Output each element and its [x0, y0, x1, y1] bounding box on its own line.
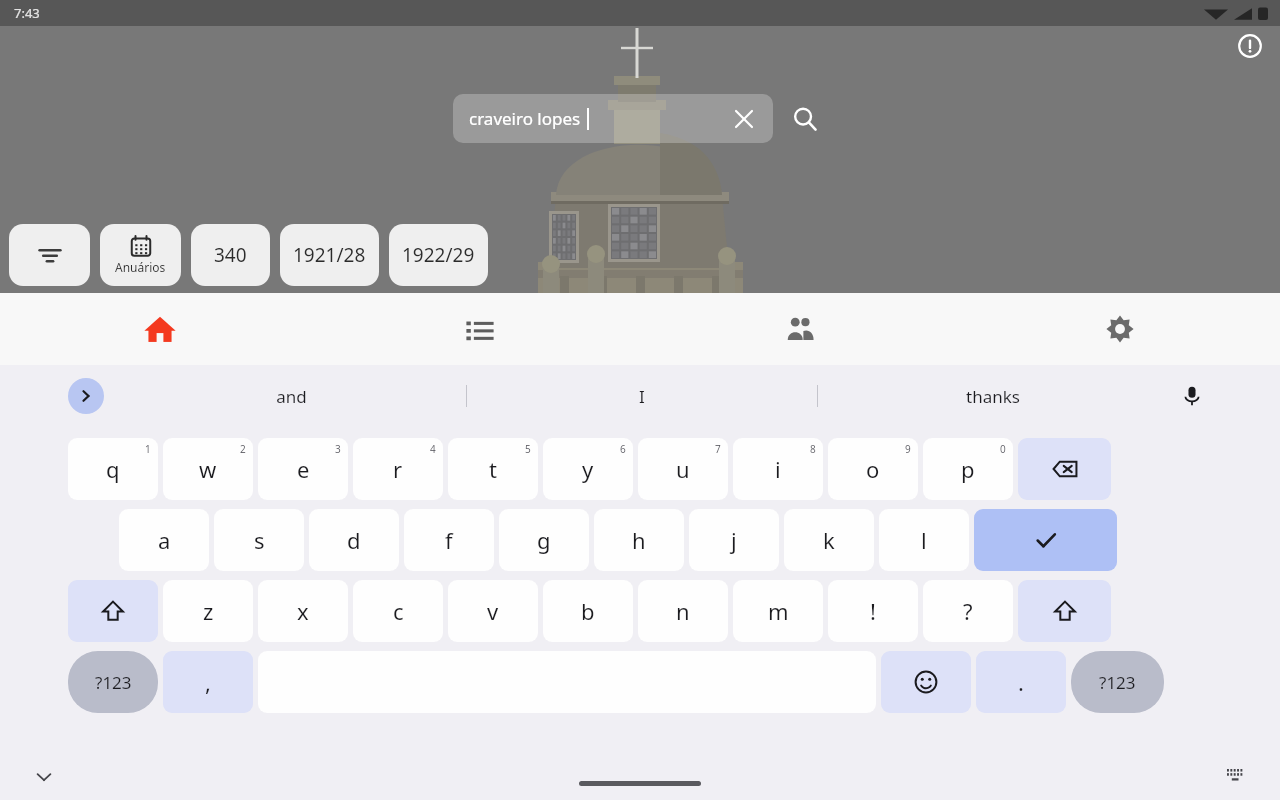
staticText: k — [823, 525, 835, 555]
staticText: 7 — [715, 442, 721, 456]
staticText: o — [866, 454, 880, 484]
staticText: thanks — [966, 385, 1020, 408]
button[interactable]: 1921/28 — [280, 224, 379, 286]
button[interactable]: and — [116, 365, 466, 427]
staticText: 5 — [525, 442, 531, 456]
staticText: j — [731, 525, 737, 555]
button[interactable]: s — [214, 509, 304, 571]
staticText: c — [393, 596, 404, 626]
button[interactable]: d — [309, 509, 399, 571]
button[interactable]: m — [733, 580, 823, 642]
staticText: b — [581, 596, 595, 626]
button[interactable]: c — [353, 580, 443, 642]
button[interactable]: t — [448, 438, 538, 500]
button[interactable]: 340 — [191, 224, 270, 286]
button[interactable]: x — [258, 580, 348, 642]
button[interactable]: v — [448, 580, 538, 642]
button[interactable]: . — [976, 651, 1066, 713]
staticText: y — [582, 454, 594, 484]
button[interactable]: Anuários — [100, 224, 181, 286]
button[interactable]: , — [163, 651, 253, 713]
staticText: craveiro lopes — [469, 107, 581, 130]
button[interactable]: y — [543, 438, 633, 500]
button[interactable]: List — [320, 293, 640, 365]
staticText: Anuários — [115, 259, 166, 275]
staticText: 1922/29 — [402, 242, 475, 268]
button[interactable]: Clear search — [731, 106, 757, 132]
staticText: 0 — [1000, 442, 1006, 456]
staticText: u — [676, 454, 690, 484]
staticText: 9 — [905, 442, 911, 456]
staticText: 4 — [430, 442, 436, 456]
staticText: t — [489, 454, 497, 484]
button[interactable]: Backspace — [1018, 438, 1111, 500]
button[interactable]: Switch keyboard — [1222, 764, 1248, 790]
button[interactable]: z — [163, 580, 253, 642]
staticText: and — [276, 385, 307, 408]
staticText: 6 — [620, 442, 626, 456]
staticText: 340 — [214, 242, 247, 268]
button[interactable]: u — [638, 438, 728, 500]
staticText: 2 — [240, 442, 246, 456]
button[interactable]: Information — [1232, 28, 1268, 64]
button[interactable]: Shift — [68, 580, 158, 642]
staticText: x — [297, 596, 309, 626]
staticText: 1921/28 — [293, 242, 366, 268]
staticText: e — [297, 454, 310, 484]
staticText: s — [254, 525, 265, 555]
button[interactable]: g — [499, 509, 589, 571]
staticText: v — [487, 596, 499, 626]
staticText: i — [775, 454, 781, 484]
staticText: n — [676, 596, 690, 626]
button[interactable]: k — [784, 509, 874, 571]
button[interactable]: craveiro lopes — [453, 94, 773, 143]
staticText: m — [768, 596, 789, 626]
staticText: ?123 — [95, 671, 132, 694]
button[interactable]: n — [638, 580, 728, 642]
staticText: r — [393, 454, 403, 484]
button[interactable]: thanks — [818, 365, 1168, 427]
staticText: I — [639, 385, 645, 408]
button[interactable]: Voice input — [1172, 376, 1212, 416]
button[interactable]: People — [640, 293, 960, 365]
staticText: 3 — [335, 442, 341, 456]
button[interactable]: w — [163, 438, 253, 500]
button[interactable]: Hide keyboard — [28, 761, 60, 793]
button[interactable]: l — [879, 509, 969, 571]
staticText: h — [632, 525, 646, 555]
button[interactable]: Emoji — [881, 651, 971, 713]
staticText: l — [921, 525, 927, 555]
staticText: ! — [870, 596, 876, 626]
button[interactable]: e — [258, 438, 348, 500]
staticText: , — [205, 667, 211, 697]
button[interactable]: j — [689, 509, 779, 571]
button[interactable]: p — [923, 438, 1013, 500]
staticText: 7:43 — [14, 4, 40, 22]
button[interactable]: 1922/29 — [389, 224, 488, 286]
button[interactable]: Shift — [1018, 580, 1111, 642]
button[interactable]: i — [733, 438, 823, 500]
staticText: 8 — [810, 442, 816, 456]
button[interactable]: o — [828, 438, 918, 500]
staticText: ? — [963, 596, 973, 626]
button[interactable]: ?123 — [1071, 651, 1164, 713]
button[interactable]: ? — [923, 580, 1013, 642]
button[interactable]: More suggestions — [68, 378, 104, 414]
button[interactable]: b — [543, 580, 633, 642]
button[interactable]: a — [119, 509, 209, 571]
button[interactable]: f — [404, 509, 494, 571]
button[interactable]: q — [68, 438, 158, 500]
staticText: q — [106, 454, 120, 484]
button[interactable]: ! — [828, 580, 918, 642]
button[interactable]: Settings — [960, 293, 1280, 365]
button[interactable]: I — [467, 365, 817, 427]
button[interactable]: Search — [783, 97, 827, 141]
button[interactable]: Enter — [974, 509, 1117, 571]
button[interactable]: h — [594, 509, 684, 571]
button[interactable]: Filter — [9, 224, 90, 286]
button[interactable]: ?123 — [68, 651, 158, 713]
button[interactable]: r — [353, 438, 443, 500]
button[interactable]: Home — [0, 293, 320, 365]
staticText: p — [961, 454, 975, 484]
